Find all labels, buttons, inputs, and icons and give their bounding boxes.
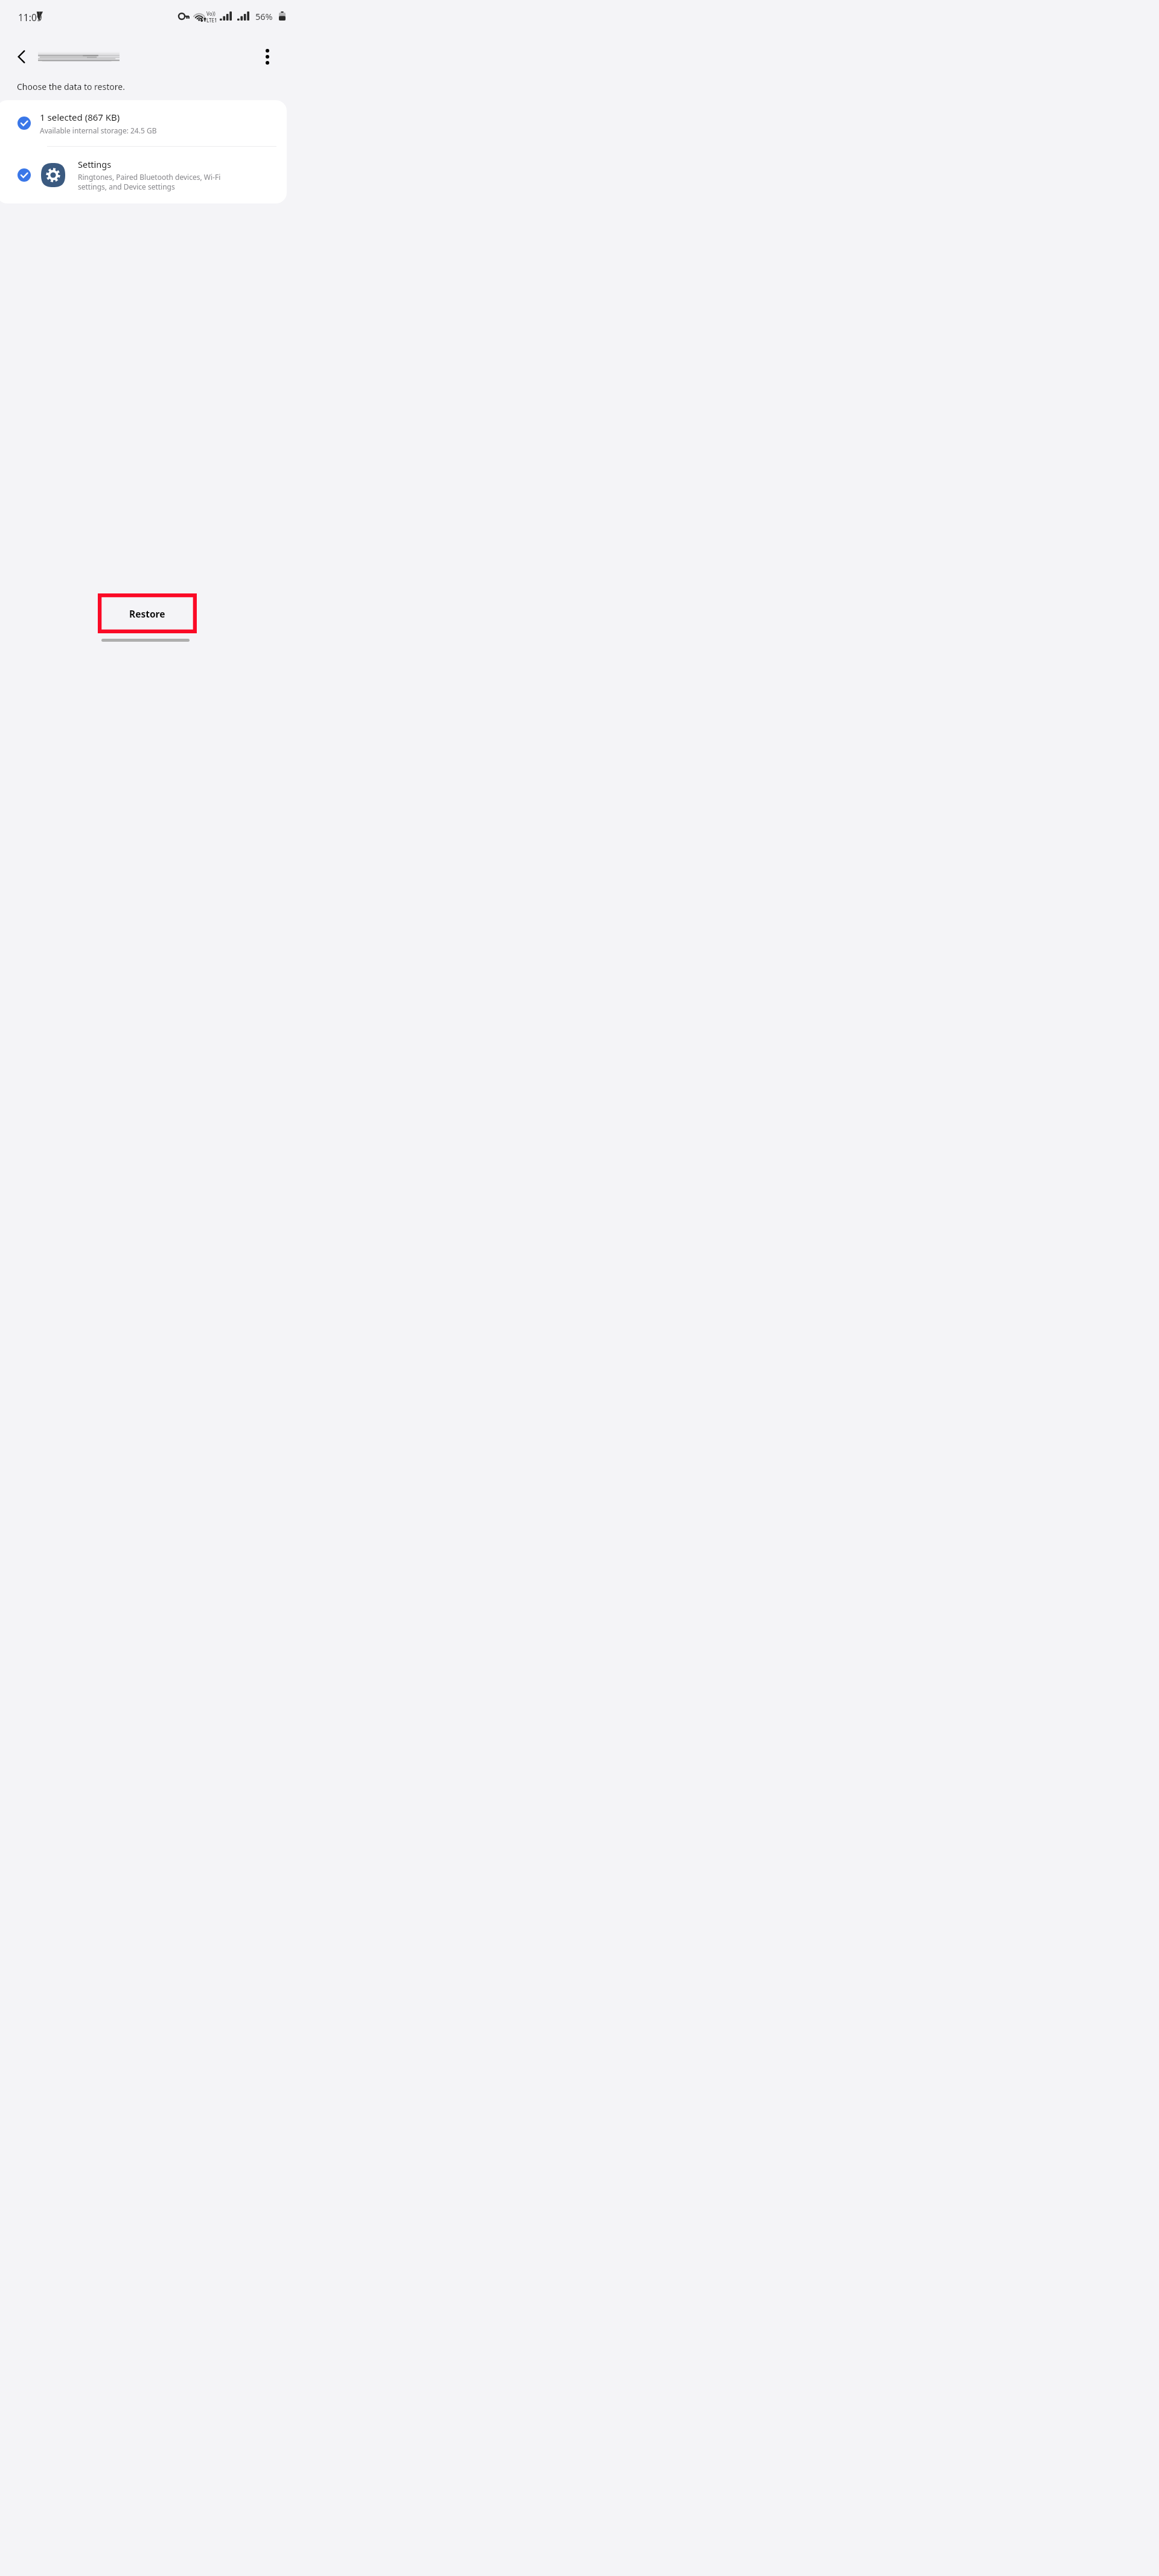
staticText: 56% — [255, 10, 273, 22]
staticText: 11:09 — [18, 11, 42, 24]
button[interactable]: Restore — [101, 596, 194, 630]
staticText: Settings — [78, 158, 112, 170]
button[interactable]: More options — [257, 48, 278, 66]
staticText: Vo)) — [206, 10, 216, 17]
staticText: Choose the data to restore. — [17, 81, 125, 92]
staticText: 1 selected (867 KB) — [40, 111, 120, 123]
staticText: Ringtones, Paired Bluetooth devices, Wi-… — [78, 172, 247, 191]
button[interactable]: 1 selected (867 KB) — [0, 100, 287, 146]
button[interactable]: Settings — [0, 146, 287, 203]
staticText: LTE1 — [206, 17, 217, 24]
staticText: Available internal storage: 24.5 GB — [40, 126, 157, 135]
staticText: Restore — [129, 607, 165, 620]
button[interactable]: Back — [12, 48, 30, 66]
